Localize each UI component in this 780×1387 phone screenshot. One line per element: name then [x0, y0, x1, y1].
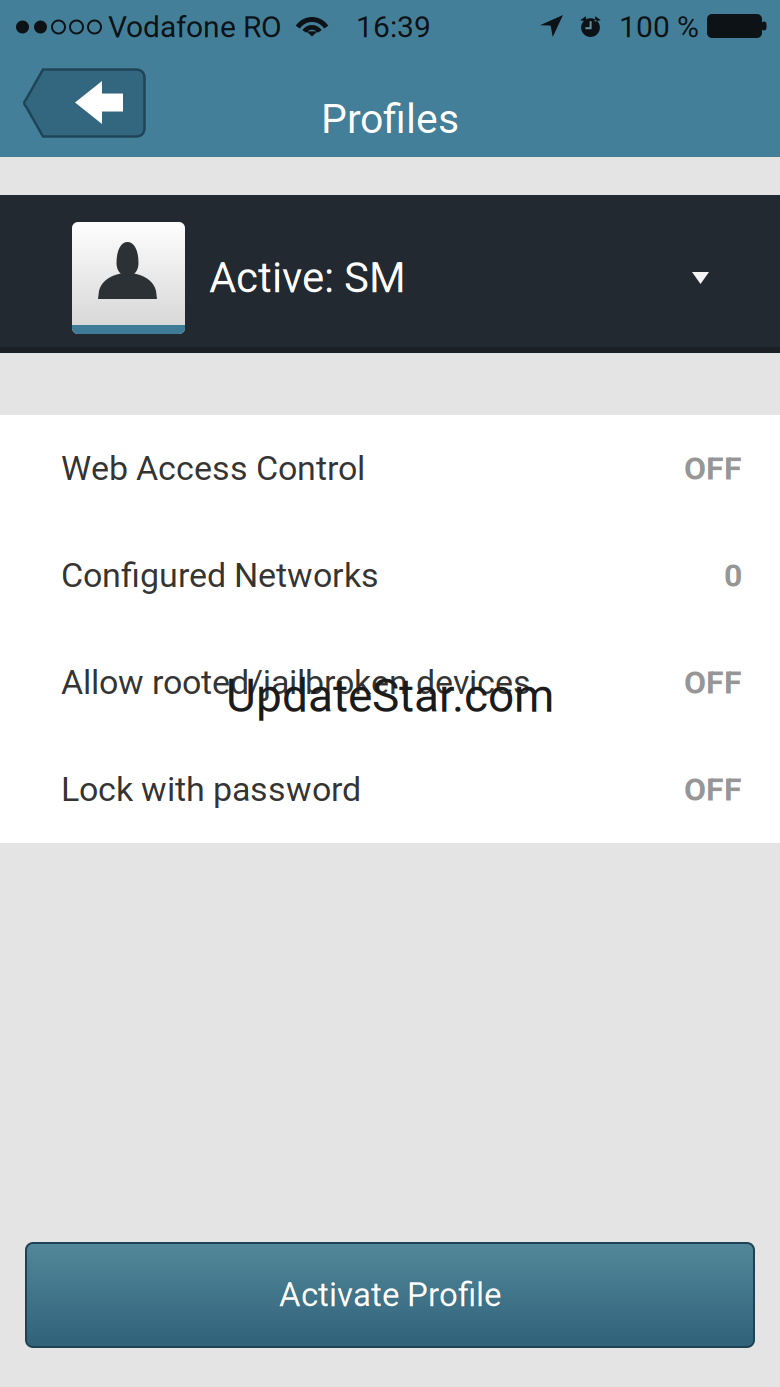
staticText: Vodafone RO: [108, 9, 282, 45]
button[interactable]: Back: [21, 68, 146, 138]
staticText: Active: SM: [209, 253, 406, 303]
button[interactable]: Activate Profile: [26, 1243, 754, 1347]
staticText: Lock with password: [61, 770, 361, 809]
staticText: 16:39: [356, 9, 431, 45]
button[interactable]: Allow rooted/jailbroken devices: [0, 629, 780, 736]
staticText: UpdateStar.com: [226, 669, 554, 723]
staticText: 100 %: [619, 9, 699, 45]
button[interactable]: Active: SM: [0, 195, 780, 353]
staticText: 0: [724, 557, 742, 594]
button[interactable]: Lock with password: [0, 736, 780, 843]
button[interactable]: Configured Networks: [0, 522, 780, 629]
staticText: Configured Networks: [61, 556, 379, 595]
staticText: Profiles: [321, 95, 459, 143]
staticText: OFF: [684, 664, 742, 701]
staticText: OFF: [684, 450, 742, 487]
staticText: Activate Profile: [279, 1276, 501, 1314]
button[interactable]: Web Access Control: [0, 415, 780, 522]
staticText: Web Access Control: [61, 449, 365, 488]
staticText: OFF: [684, 771, 742, 808]
staticText: Allow rooted/jailbroken devices: [61, 663, 531, 702]
